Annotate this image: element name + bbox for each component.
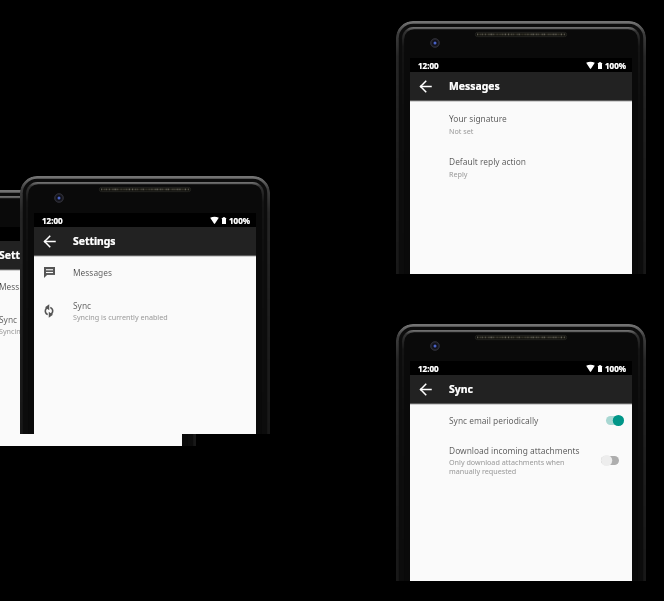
staticText: Syncing is currently enabled <box>73 312 168 322</box>
staticText: 12:00 <box>42 215 63 226</box>
button[interactable]: Sync email periodically <box>410 405 632 432</box>
button[interactable]: Sync <box>34 284 256 328</box>
staticText: Only download attachments when manually … <box>449 457 565 476</box>
staticText: Reply <box>449 169 468 179</box>
staticText: 100% <box>229 215 250 226</box>
button[interactable]: Sync <box>0 298 182 342</box>
staticText: Settings <box>0 248 42 262</box>
staticText: Sync <box>73 300 92 311</box>
staticText: Sync <box>0 314 18 325</box>
staticText: 12:00 <box>418 363 439 374</box>
staticText: Syncing is currently enabled <box>0 326 94 336</box>
staticText: Messages <box>73 267 112 278</box>
staticText: Default reply action <box>449 156 527 167</box>
staticText: Sync email periodically <box>449 415 539 426</box>
button[interactable]: Navigate up <box>410 72 441 100</box>
staticText: Settings <box>73 234 116 248</box>
staticText: Your signature <box>449 113 507 124</box>
staticText: Messages <box>449 79 500 93</box>
button[interactable]: Disabled <box>601 454 624 467</box>
button[interactable]: Navigate up <box>34 227 65 255</box>
staticText: Sync <box>449 382 473 396</box>
button[interactable]: Navigate up <box>410 375 441 403</box>
button[interactable]: Default reply action <box>410 139 632 182</box>
staticText: Not set <box>449 126 474 136</box>
staticText: Download incoming attachments <box>449 445 580 456</box>
button[interactable]: Messages <box>34 257 256 284</box>
button[interactable]: Download incoming attachments <box>410 432 632 481</box>
staticText: 12:00 <box>418 60 439 71</box>
button[interactable]: Enabled <box>601 414 624 427</box>
button[interactable]: Your signature <box>410 102 632 139</box>
staticText: 100% <box>605 60 626 71</box>
button[interactable]: Messages <box>0 271 182 298</box>
staticText: Messages <box>0 281 38 292</box>
staticText: 100% <box>605 363 626 374</box>
